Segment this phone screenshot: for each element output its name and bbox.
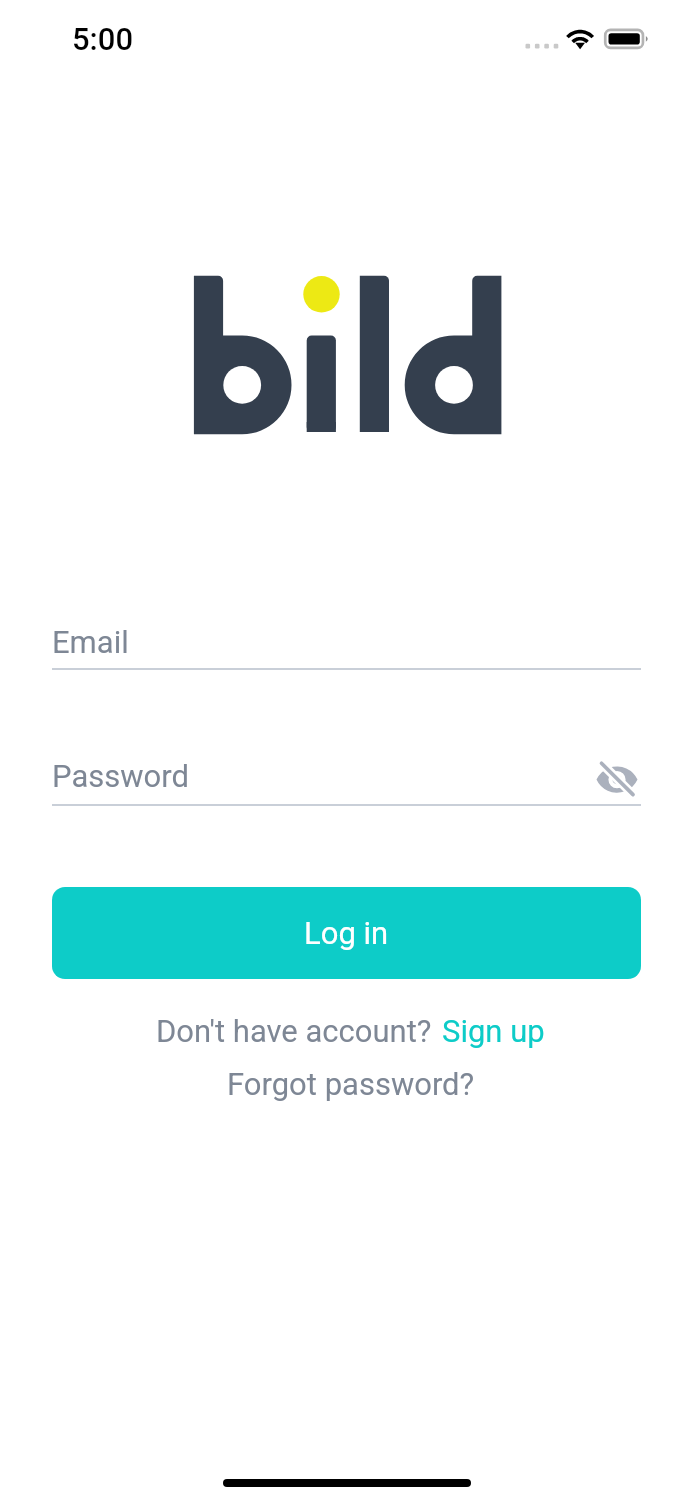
button[interactable]: Show password xyxy=(593,756,641,804)
staticText: Don't have account? xyxy=(156,1013,432,1049)
button[interactable]: Forgot password? xyxy=(227,1066,475,1102)
button[interactable]: Password xyxy=(52,758,641,804)
staticText: Sign up xyxy=(442,1013,545,1049)
staticText: 5:00 xyxy=(72,21,134,57)
staticText: Email xyxy=(52,624,129,660)
button[interactable]: Email xyxy=(52,624,641,670)
staticText: Log in xyxy=(304,915,389,951)
staticText: Password xyxy=(52,758,189,794)
button[interactable]: Log in xyxy=(52,887,641,979)
button[interactable]: Sign up xyxy=(442,1013,545,1049)
staticText: Forgot password? xyxy=(227,1066,475,1102)
